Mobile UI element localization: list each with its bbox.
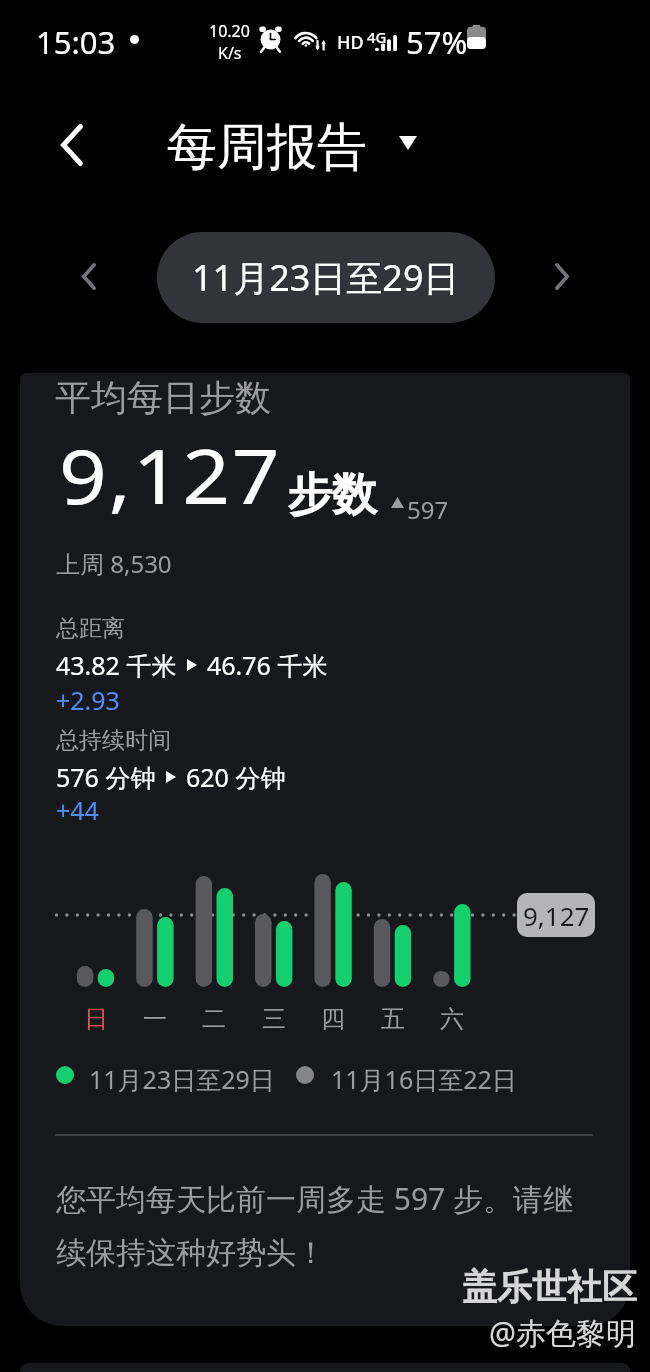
button[interactable]: Previous week [54,241,124,311]
staticText: K/s [218,42,242,64]
staticText: 一 [143,1004,167,1034]
staticText: 11月23日至29日 [192,253,460,302]
staticText: 平均每日步数 [55,375,271,420]
staticText: 上周 8,530 [56,547,172,580]
staticText: 15:03 [36,21,116,63]
staticText: +44 [56,793,99,827]
staticText: +2.93 [56,683,120,717]
staticText: 11月23日至29日 [89,1062,275,1096]
staticText: 您平均每天比前一周多走 597 步。请继续保持这种好势头！ [56,1178,596,1271]
staticText: HD [337,30,364,55]
staticText: 597 [407,493,449,526]
staticText: 总持续时间 [56,726,171,755]
staticText: 日 [84,1004,108,1034]
staticText: 五 [381,1004,405,1034]
staticText: 43.82 千米 [56,648,177,682]
staticText: 六 [440,1004,464,1034]
staticText: 9,127 [523,898,590,933]
staticText: 10.20 [209,20,250,42]
staticText: 每周报告 [167,116,367,179]
staticText: 57% [406,21,468,63]
button[interactable]: 11月23日至29日 [157,232,495,323]
button[interactable]: Back [30,103,114,187]
staticText: 步数 [287,467,377,524]
staticText: 9,127 [59,425,282,526]
staticText: 盖乐世社区 [462,1265,637,1309]
staticText: 4G [367,27,387,47]
staticText: 三 [262,1004,286,1034]
staticText: @赤色黎明 [489,1312,636,1353]
staticText: 46.76 千米 [207,648,328,682]
staticText: 11月16日至22日 [331,1062,517,1096]
staticText: 二 [202,1004,226,1034]
button[interactable]: Change period [385,120,431,166]
staticText: 总距离 [56,614,125,643]
staticText: 620 分钟 [186,760,286,794]
button[interactable]: Next week [527,241,597,311]
staticText: 576 分钟 [56,760,156,794]
staticText: 四 [321,1004,345,1034]
